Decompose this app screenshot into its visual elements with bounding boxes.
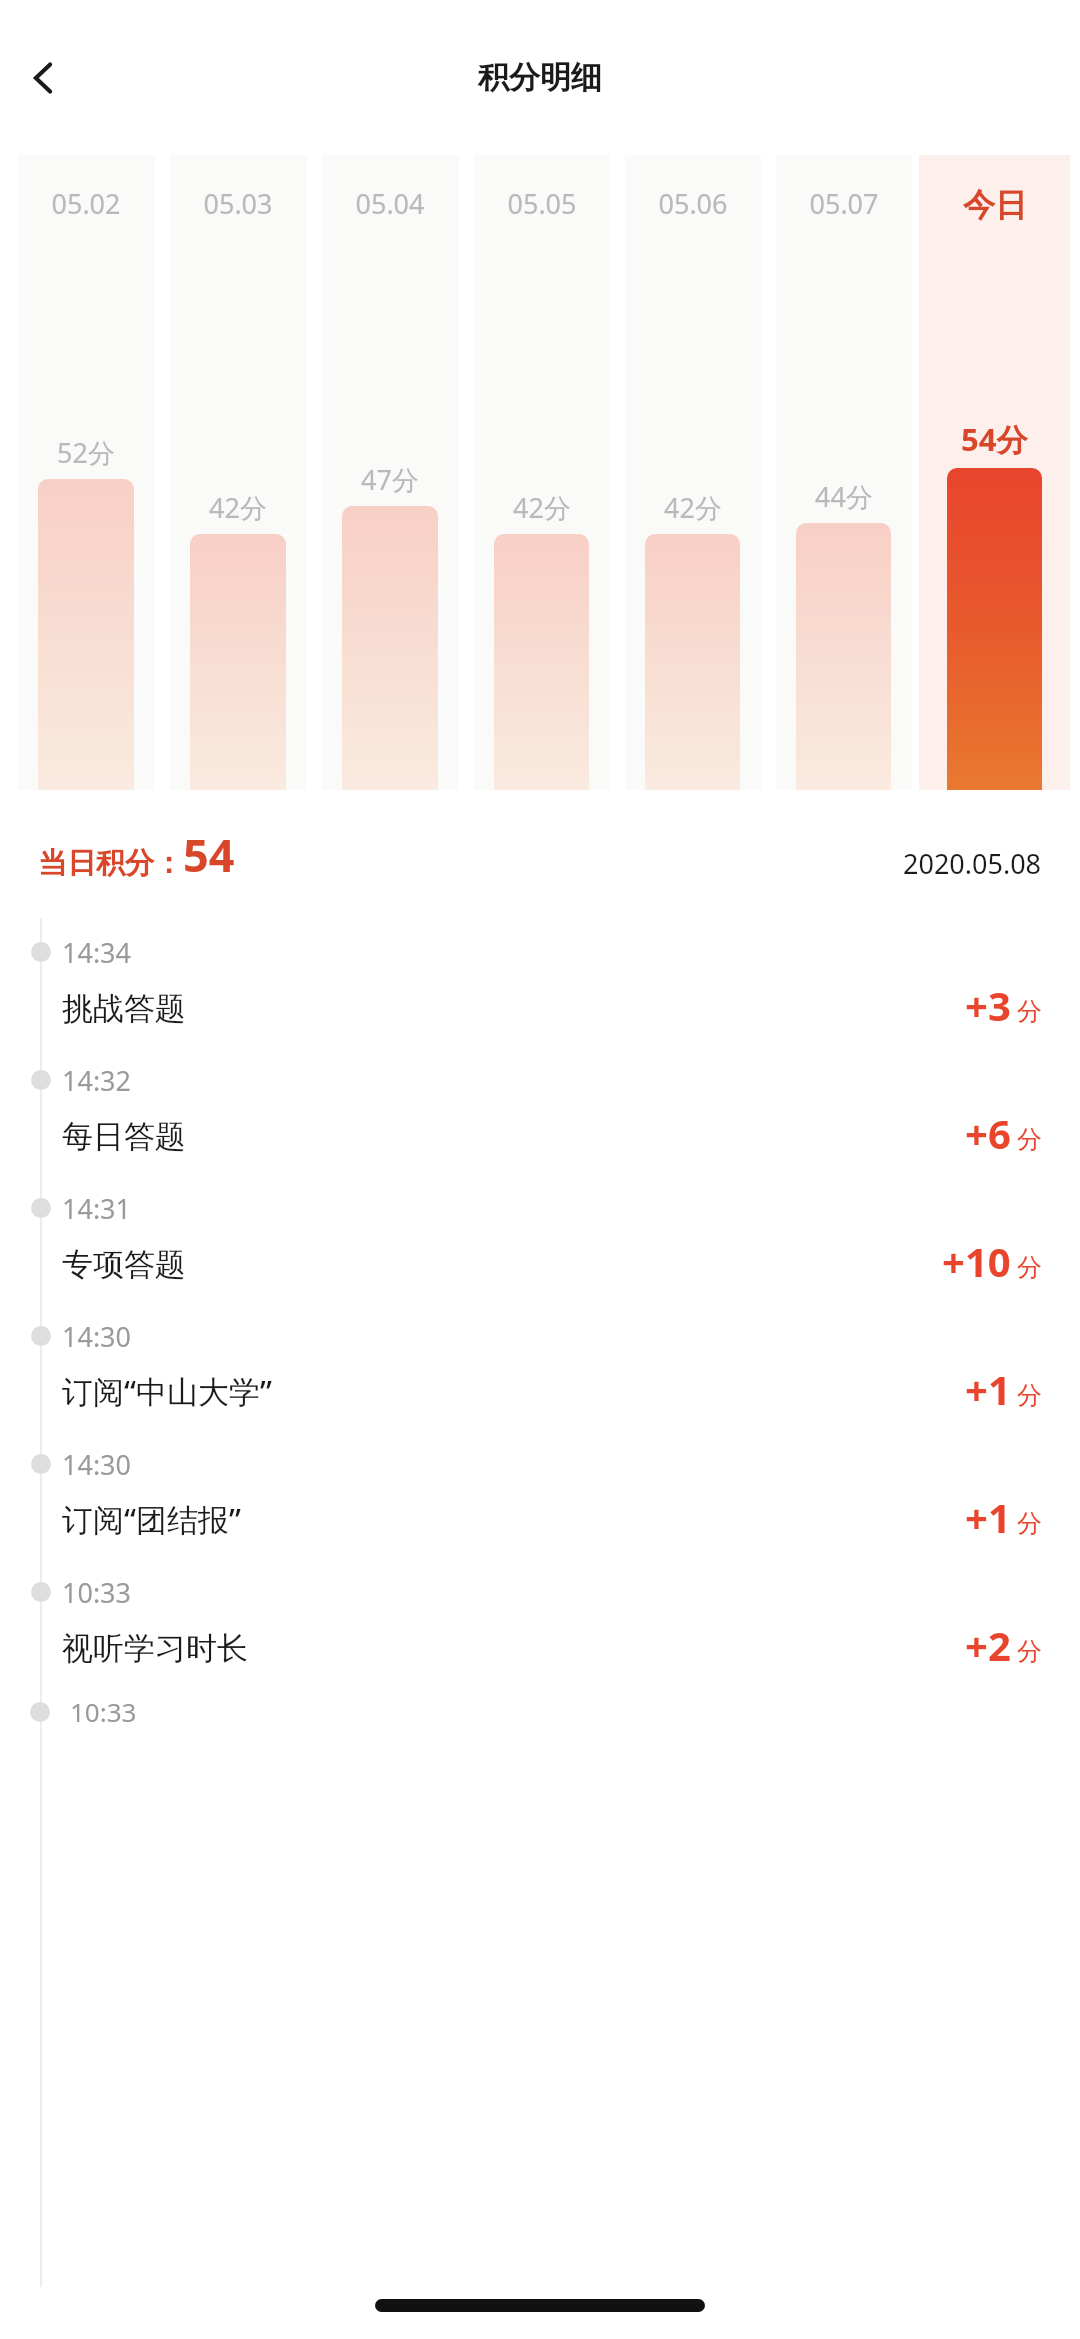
staticText: 52分 [57, 434, 115, 471]
staticText: 当日积分： [38, 845, 183, 882]
button[interactable]: 14:32 [0, 1046, 1080, 1174]
staticText: 14:32 [62, 1062, 132, 1099]
button[interactable]: 10:33 [0, 1558, 1080, 1686]
staticText: 44分 [815, 478, 873, 515]
button[interactable]: 14:30 [0, 1302, 1080, 1430]
staticText: +10 [942, 1234, 1011, 1288]
staticText: 10:33 [70, 1694, 137, 1729]
button[interactable]: 05.04 [314, 155, 466, 790]
staticText: 订阅“团结报” [62, 1498, 241, 1540]
button[interactable]: 05.03 [162, 155, 314, 790]
staticText: 分 [1017, 1636, 1042, 1667]
staticText: 分 [1017, 1508, 1042, 1539]
button[interactable]: 14:30 [0, 1430, 1080, 1558]
staticText: 42分 [209, 489, 267, 526]
staticText: 2020.05.08 [903, 845, 1042, 882]
staticText: 42分 [664, 489, 722, 526]
button[interactable]: Back [8, 42, 80, 114]
staticText: 订阅“中山大学” [62, 1370, 272, 1412]
staticText: 今日 [963, 185, 1027, 225]
staticText: 54分 [961, 418, 1028, 460]
button[interactable]: 05.02 [10, 155, 162, 790]
staticText: 47分 [361, 461, 419, 498]
button[interactable]: 05.05 [466, 155, 617, 790]
staticText: 54 [183, 824, 235, 885]
button[interactable]: 今日 [919, 155, 1070, 790]
staticText: 分 [1017, 1124, 1042, 1155]
staticText: 积分明细 [478, 58, 602, 97]
button[interactable]: 05.06 [617, 155, 768, 790]
button[interactable]: 14:34 [0, 918, 1080, 1046]
staticText: +1 [965, 1362, 1011, 1416]
staticText: 10:33 [62, 1574, 132, 1611]
staticText: 14:30 [62, 1318, 132, 1355]
staticText: 14:30 [62, 1446, 132, 1483]
staticText: 05.03 [203, 185, 273, 222]
staticText: +2 [965, 1618, 1011, 1672]
staticText: 专项答题 [62, 1245, 186, 1284]
staticText: +6 [965, 1106, 1011, 1160]
staticText: 分 [1017, 1380, 1042, 1411]
staticText: +3 [965, 978, 1011, 1032]
button[interactable]: 14:31 [0, 1174, 1080, 1302]
staticText: 14:34 [62, 934, 132, 971]
staticText: 视听学习时长 [62, 1629, 248, 1668]
staticText: 05.02 [51, 185, 121, 222]
staticText: 05.07 [809, 185, 879, 222]
staticText: 挑战答题 [62, 989, 186, 1028]
button[interactable]: 05.07 [768, 155, 919, 790]
staticText: 05.06 [658, 185, 728, 222]
staticText: +1 [965, 1490, 1011, 1544]
staticText: 每日答题 [62, 1117, 186, 1156]
staticText: 05.04 [355, 185, 425, 222]
staticText: 14:31 [62, 1190, 132, 1227]
staticText: 42分 [513, 489, 571, 526]
staticText: 05.05 [507, 185, 577, 222]
staticText: 分 [1017, 996, 1042, 1027]
staticText: 分 [1017, 1252, 1042, 1283]
